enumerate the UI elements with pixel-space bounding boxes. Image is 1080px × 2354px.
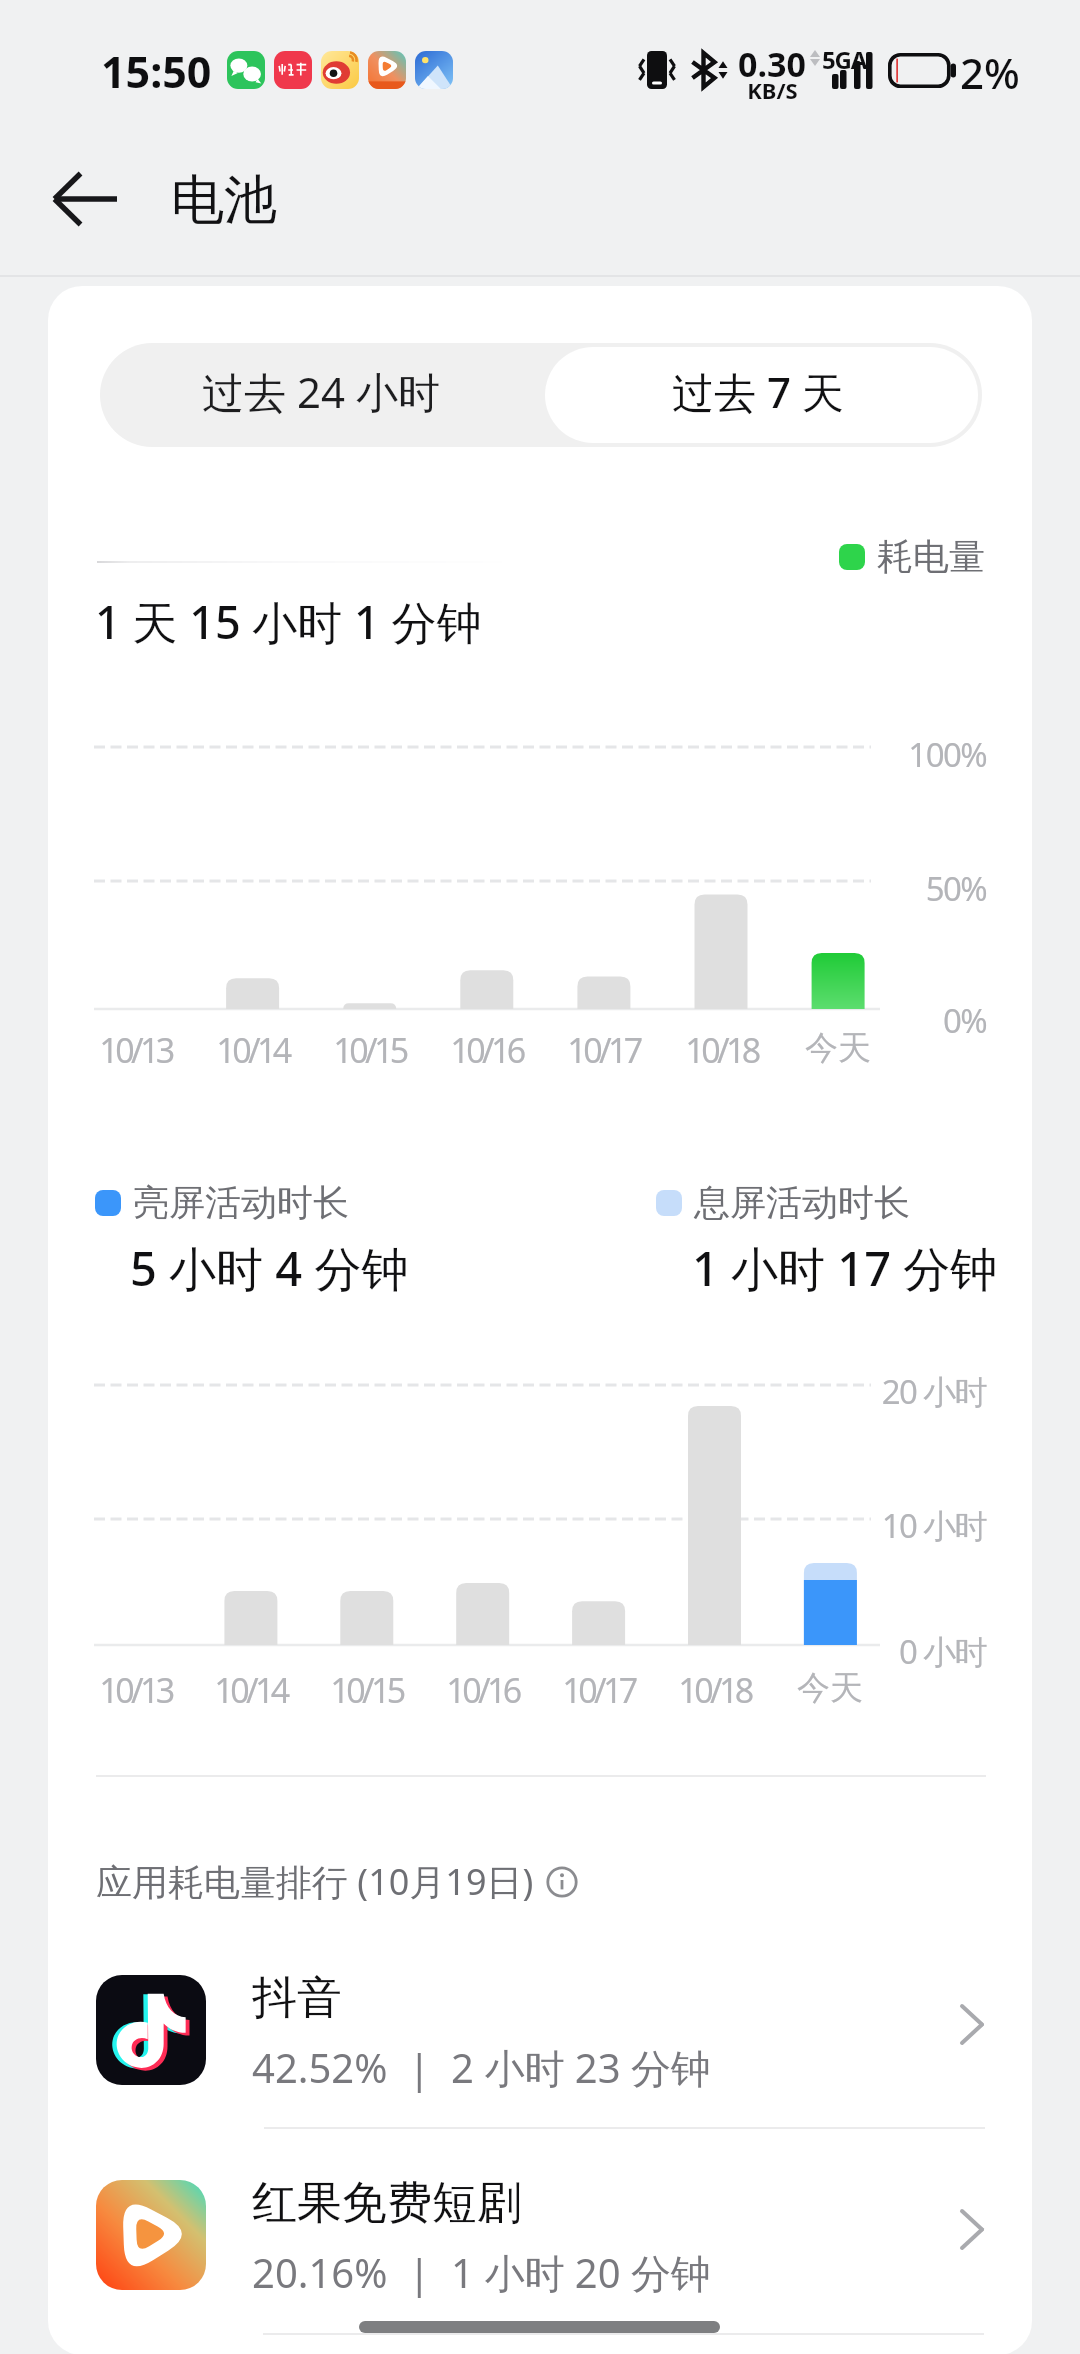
staticText: 50% <box>925 866 986 911</box>
staticText: 过去 24 小时 <box>202 363 440 420</box>
staticText: 1 小时 17 分钟 <box>692 1236 998 1300</box>
staticText: 息屏活动时长 <box>694 1180 910 1225</box>
staticText: 过去 7 天 <box>672 363 844 420</box>
staticText: 10/17 <box>567 1027 640 1073</box>
staticText: 电池 <box>171 167 277 234</box>
staticText: 抖音 <box>252 1970 342 2027</box>
staticText: 10/17 <box>562 1667 635 1713</box>
button[interactable]: 抖音 <box>48 1932 1032 2132</box>
staticText: 10/15 <box>330 1667 403 1713</box>
staticText: 1 天 15 小时 1 分钟 <box>95 591 482 652</box>
staticText: 100% <box>908 732 986 777</box>
button[interactable]: 过去 7 天 <box>545 347 978 443</box>
button[interactable]: 红果免费短剧 <box>48 2137 1032 2337</box>
staticText: 10/18 <box>678 1667 751 1713</box>
staticText: 10/16 <box>450 1027 523 1073</box>
button[interactable]: 过去 24 小时 <box>100 343 541 447</box>
staticText: 10/18 <box>685 1027 758 1073</box>
staticText: 2% <box>960 44 1020 101</box>
staticText: 10/15 <box>333 1027 406 1073</box>
staticText: 10/14 <box>214 1667 287 1713</box>
staticText: 15:50 <box>101 42 212 101</box>
staticText: 今天 <box>797 1667 863 1709</box>
staticText: 10/14 <box>216 1027 289 1073</box>
staticText: 20.16% | 1 小时 20 分钟 <box>252 2245 711 2300</box>
staticText: 今天 <box>805 1027 871 1069</box>
staticText: 10/16 <box>446 1667 519 1713</box>
staticText: 0.30 <box>738 41 806 87</box>
staticText: 10/13 <box>99 1667 172 1713</box>
staticText: 0 小时 <box>898 1629 986 1674</box>
staticText: 应用耗电量排行 (10月19日) <box>96 1857 534 1906</box>
staticText: 20 小时 <box>881 1369 986 1414</box>
staticText: 5GA <box>822 43 867 76</box>
staticText: 10 小时 <box>881 1503 986 1548</box>
staticText: 42.52% | 2 小时 23 分钟 <box>252 2040 711 2095</box>
staticText: 0% <box>942 998 986 1043</box>
staticText: 5 小时 4 分钟 <box>130 1236 409 1300</box>
button[interactable]: Back <box>28 158 142 240</box>
staticText: 亮屏活动时长 <box>133 1180 349 1225</box>
staticText: 耗电量 <box>877 534 985 579</box>
staticText: 10/13 <box>99 1027 172 1073</box>
button[interactable]: More info <box>546 1866 578 1898</box>
staticText: KB/S <box>747 75 798 105</box>
staticText: 红果免费短剧 <box>252 2175 522 2232</box>
